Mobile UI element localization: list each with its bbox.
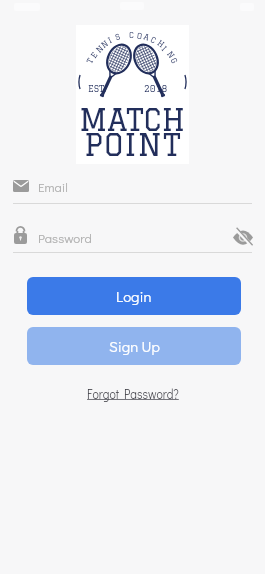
staticText: Email	[38, 178, 68, 195]
staticText: I	[106, 35, 114, 44]
button[interactable]	[231, 226, 255, 248]
button[interactable]: Forgot Password?	[87, 384, 179, 402]
button[interactable]: Sign Up	[27, 327, 241, 365]
staticText: N	[94, 43, 105, 54]
staticText: N	[166, 49, 177, 60]
staticText: E	[89, 49, 99, 59]
staticText: H	[156, 38, 167, 49]
staticText: A	[143, 31, 151, 42]
staticText: T	[84, 56, 95, 65]
staticText: C	[149, 34, 158, 45]
staticText: 2018	[144, 83, 168, 93]
button[interactable]: Password	[0, 222, 265, 252]
staticText: C	[129, 30, 134, 39]
staticText: O	[136, 31, 144, 40]
staticText: POINT	[84, 127, 182, 161]
staticText: I	[160, 44, 170, 53]
button[interactable]: Login	[27, 277, 241, 315]
staticText: S	[114, 31, 121, 41]
button[interactable]: Email	[0, 172, 265, 202]
staticText: MATCH	[79, 102, 186, 136]
staticText: Password	[38, 229, 92, 246]
staticText: N	[99, 38, 110, 49]
staticText: Sign Up	[109, 336, 160, 356]
staticText: G	[169, 56, 180, 65]
staticText: EST.	[88, 83, 107, 93]
staticText: Login	[116, 286, 152, 306]
